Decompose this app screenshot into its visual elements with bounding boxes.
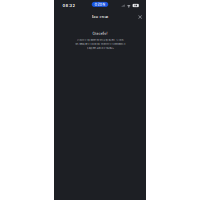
staticText: Ваш отзыв: [91, 15, 108, 19]
staticText: публикации отзыва вы можете отслеживать …: [75, 42, 125, 45]
staticText: 08:32: [62, 3, 75, 8]
staticText: OZON: [94, 2, 105, 6]
staticText: Спасибо!: [92, 32, 107, 35]
staticText: разделе «Мои отзывы»: [86, 46, 113, 50]
button[interactable]: Close: [136, 12, 145, 21]
staticText: Отзыв отправлен на модерацию. Статус: [76, 38, 123, 41]
